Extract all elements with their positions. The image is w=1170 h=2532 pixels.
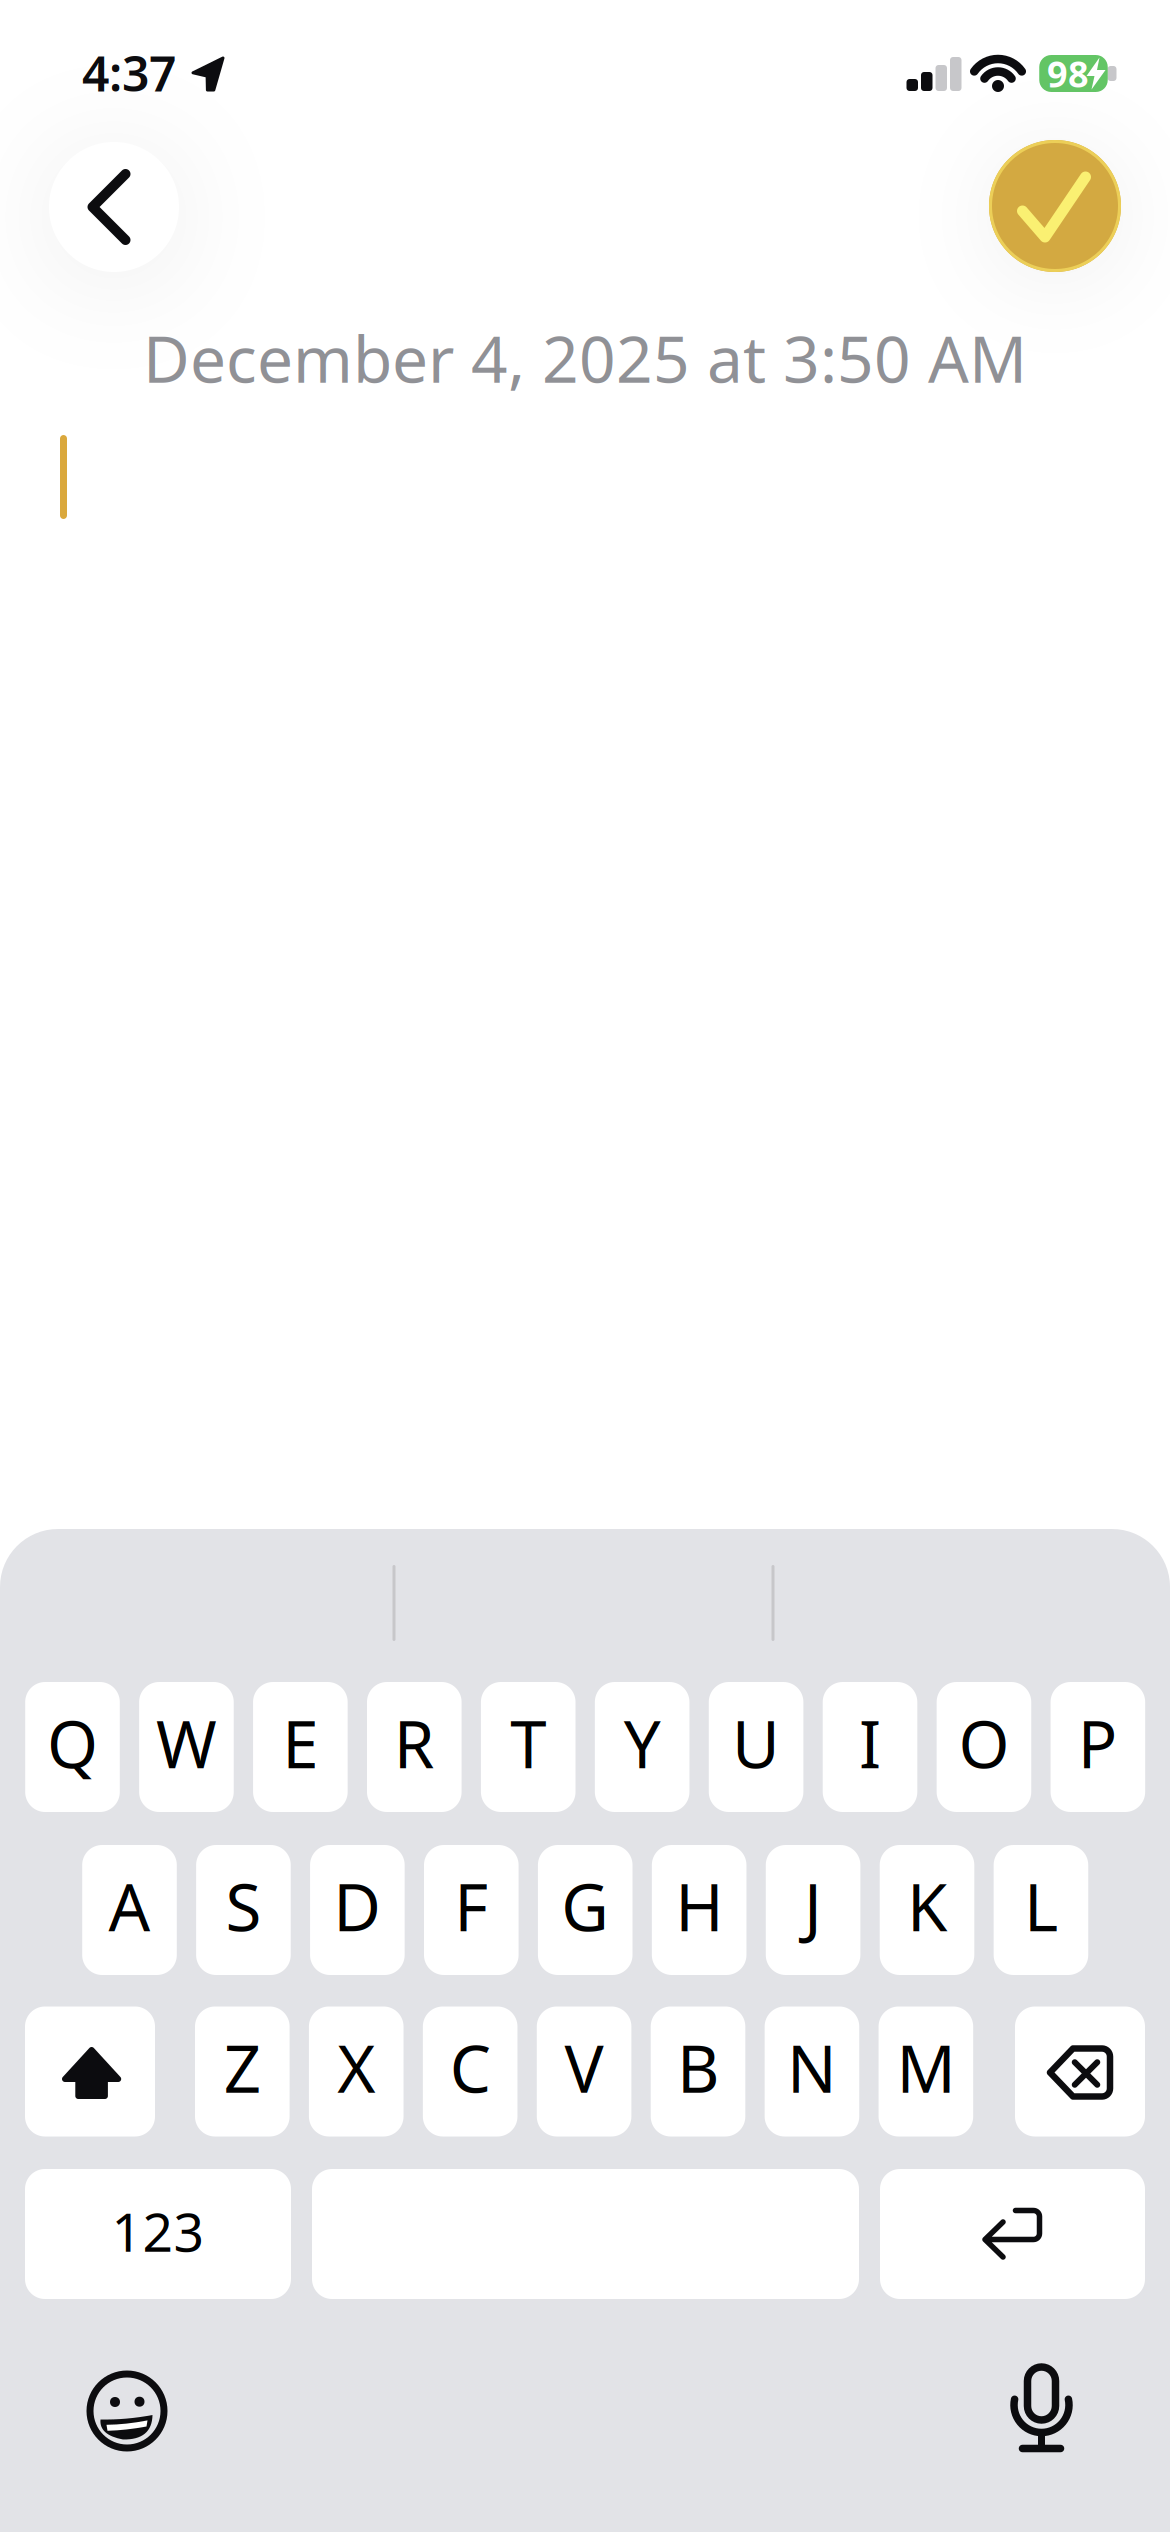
button[interactable]: H bbox=[652, 1845, 746, 1975]
staticText: I bbox=[859, 1700, 881, 1786]
staticText: Q bbox=[47, 1700, 98, 1786]
button[interactable]: I bbox=[823, 1682, 917, 1812]
staticText: December 4, 2025 at 3:50 AM bbox=[143, 315, 1027, 400]
button[interactable]: D bbox=[310, 1845, 405, 1975]
staticText: P bbox=[1078, 1700, 1118, 1786]
staticText: 123 bbox=[111, 2196, 204, 2266]
button[interactable]: M bbox=[879, 2006, 973, 2136]
button[interactable]: Q bbox=[25, 1682, 120, 1812]
button[interactable]: N bbox=[765, 2006, 859, 2136]
button[interactable]: Delete bbox=[1015, 2006, 1145, 2136]
staticText: G bbox=[561, 1863, 609, 1949]
button[interactable]: K bbox=[880, 1845, 974, 1975]
button[interactable]: S bbox=[196, 1845, 291, 1975]
button[interactable]: Done bbox=[989, 140, 1121, 272]
button[interactable]: F bbox=[424, 1845, 519, 1975]
button[interactable]: Dictation bbox=[1012, 2362, 1070, 2454]
staticText: W bbox=[156, 1700, 217, 1786]
staticText: T bbox=[510, 1700, 546, 1786]
button[interactable]: B bbox=[651, 2006, 745, 2136]
button[interactable]: U bbox=[709, 1682, 803, 1812]
button[interactable]: L bbox=[994, 1845, 1088, 1975]
button[interactable]: W bbox=[139, 1682, 234, 1812]
staticText: J bbox=[804, 1863, 822, 1949]
staticText: V bbox=[565, 2024, 604, 2111]
staticText: E bbox=[282, 1700, 318, 1786]
staticText: F bbox=[454, 1863, 488, 1949]
staticText: B bbox=[677, 2024, 719, 2111]
staticText: K bbox=[907, 1863, 947, 1949]
button[interactable]: P bbox=[1051, 1682, 1145, 1812]
button[interactable]: R bbox=[367, 1682, 462, 1812]
staticText: A bbox=[108, 1863, 150, 1949]
staticText: H bbox=[675, 1863, 723, 1949]
button[interactable]: V bbox=[537, 2006, 631, 2136]
staticText: X bbox=[337, 2024, 375, 2111]
button[interactable]: Numbers bbox=[25, 2169, 291, 2299]
staticText: U bbox=[732, 1700, 780, 1786]
staticText: Z bbox=[224, 2024, 261, 2111]
button[interactable]: Shift bbox=[25, 2006, 155, 2136]
button[interactable]: X bbox=[309, 2006, 403, 2136]
button[interactable]: Return bbox=[880, 2169, 1145, 2299]
staticText: S bbox=[225, 1863, 261, 1949]
button[interactable]: A bbox=[82, 1845, 177, 1975]
staticText: D bbox=[333, 1863, 381, 1949]
button[interactable]: Z bbox=[195, 2006, 290, 2136]
button[interactable]: T bbox=[481, 1682, 575, 1812]
staticText: L bbox=[1024, 1863, 1058, 1949]
button[interactable]: E bbox=[253, 1682, 348, 1812]
button[interactable]: O bbox=[937, 1682, 1031, 1812]
button[interactable]: Back bbox=[49, 142, 179, 272]
staticText: C bbox=[450, 2024, 491, 2111]
staticText: M bbox=[896, 2024, 955, 2111]
staticText: R bbox=[394, 1700, 435, 1786]
staticText: 98 bbox=[1047, 50, 1089, 97]
button[interactable]: G bbox=[538, 1845, 632, 1975]
staticText: 4:37 bbox=[82, 41, 176, 105]
staticText: N bbox=[787, 2024, 837, 2111]
button[interactable]: J bbox=[766, 1845, 860, 1975]
button[interactable]: Y bbox=[595, 1682, 689, 1812]
staticText: Y bbox=[624, 1700, 661, 1786]
button[interactable]: Emoji bbox=[82, 2366, 172, 2456]
staticText: O bbox=[958, 1700, 1009, 1786]
button[interactable]: C bbox=[423, 2006, 517, 2136]
